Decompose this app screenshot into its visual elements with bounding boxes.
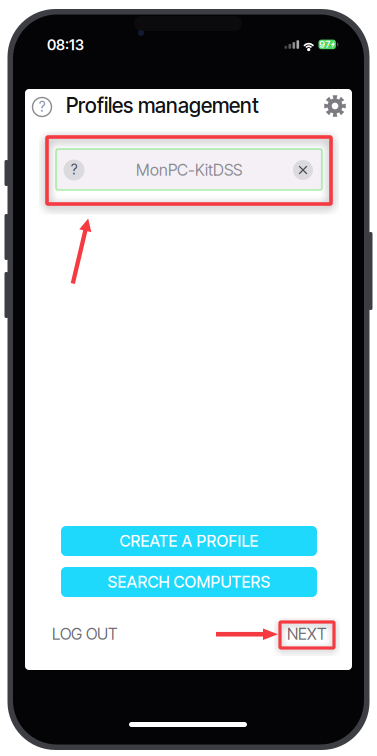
button[interactable]: CREATE A PROFILE xyxy=(61,526,317,556)
button[interactable]: NEXT xyxy=(286,626,328,642)
button[interactable]: Help xyxy=(32,97,51,116)
staticText: ? xyxy=(39,98,45,115)
staticText: CREATE A PROFILE xyxy=(119,531,258,551)
staticText: NEXT xyxy=(287,624,327,644)
staticText: MonPC-KitDSS xyxy=(136,160,242,180)
staticText: 97 xyxy=(319,39,330,50)
staticText: Profiles management xyxy=(66,93,259,118)
button[interactable]: LOG OUT xyxy=(52,626,132,642)
button[interactable]: SEARCH COMPUTERS xyxy=(61,567,317,597)
button[interactable]: Settings xyxy=(324,95,346,117)
staticText: 08:13 xyxy=(47,36,84,54)
staticText: LOG OUT xyxy=(52,624,118,644)
staticText: ? xyxy=(71,161,77,178)
button[interactable]: ? xyxy=(56,149,322,190)
staticText: SEARCH COMPUTERS xyxy=(107,572,270,592)
